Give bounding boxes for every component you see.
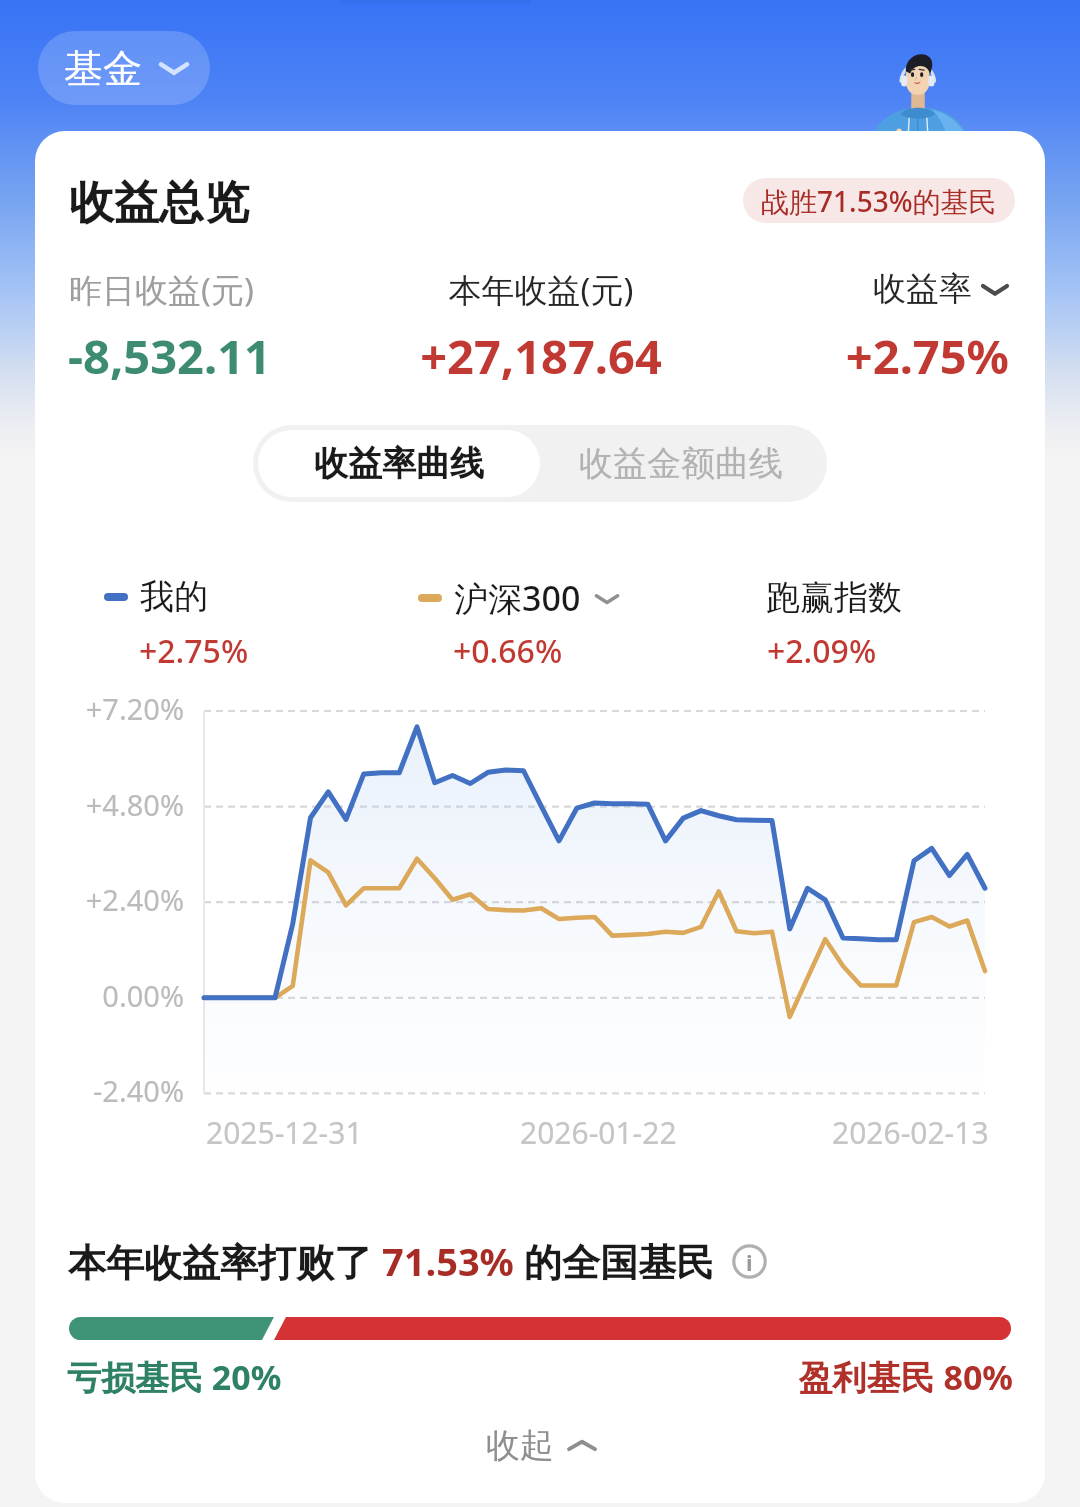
staticText: 我的 — [140, 575, 208, 618]
button[interactable]: 战胜71.53%的基民 — [743, 178, 1015, 223]
staticText: 71.53% — [382, 1235, 514, 1287]
staticText: +2.40% — [35, 880, 184, 919]
staticText: 收起 — [486, 1424, 554, 1467]
staticText: 亏损基民 20% — [67, 1354, 282, 1400]
staticText: i — [746, 1247, 753, 1277]
button[interactable]: 收益率曲线 — [258, 430, 540, 497]
staticText: 的全国基民 — [514, 1235, 714, 1287]
button[interactable]: 沪深300 — [418, 575, 621, 621]
staticText: +0.66% — [453, 629, 563, 673]
staticText: 收益率曲线 — [314, 442, 484, 485]
staticText: 本年收益率打败了 — [68, 1235, 382, 1287]
staticText: 基金 — [64, 44, 142, 93]
staticText: -8,532.11 — [68, 324, 271, 388]
staticText: 盈利基民 80% — [635, 1354, 1013, 1400]
staticText: +2.75% — [635, 324, 1009, 388]
staticText: +4.80% — [35, 785, 184, 824]
staticText: 跑赢指数 — [766, 576, 902, 619]
staticText: 昨日收益(元) — [69, 267, 254, 312]
button[interactable]: 收益金额曲线 — [540, 430, 822, 497]
staticText: +27,187.64 — [341, 324, 741, 388]
staticText: 战胜71.53%的基民 — [761, 182, 997, 220]
staticText: 2026-01-22 — [520, 1112, 677, 1153]
staticText: 2026-02-13 — [832, 1112, 989, 1153]
staticText: 0.00% — [35, 976, 184, 1015]
button[interactable]: Info — [732, 1244, 767, 1279]
staticText: +2.09% — [767, 629, 877, 673]
button[interactable]: 收起 — [462, 1412, 619, 1479]
staticText: +2.75% — [139, 629, 249, 673]
staticText: -2.40% — [35, 1071, 184, 1110]
staticText: 沪深300 — [454, 575, 581, 621]
button[interactable]: 我的 — [104, 575, 208, 618]
staticText: 本年收益(元) — [341, 267, 741, 312]
staticText: 收益率 — [873, 268, 972, 310]
staticText: 收益总览 — [69, 175, 249, 232]
staticText: 收益金额曲线 — [579, 442, 783, 485]
staticText: 2025-12-31 — [206, 1112, 363, 1153]
staticText: +7.20% — [35, 689, 184, 728]
button[interactable]: 基金 — [38, 31, 210, 105]
